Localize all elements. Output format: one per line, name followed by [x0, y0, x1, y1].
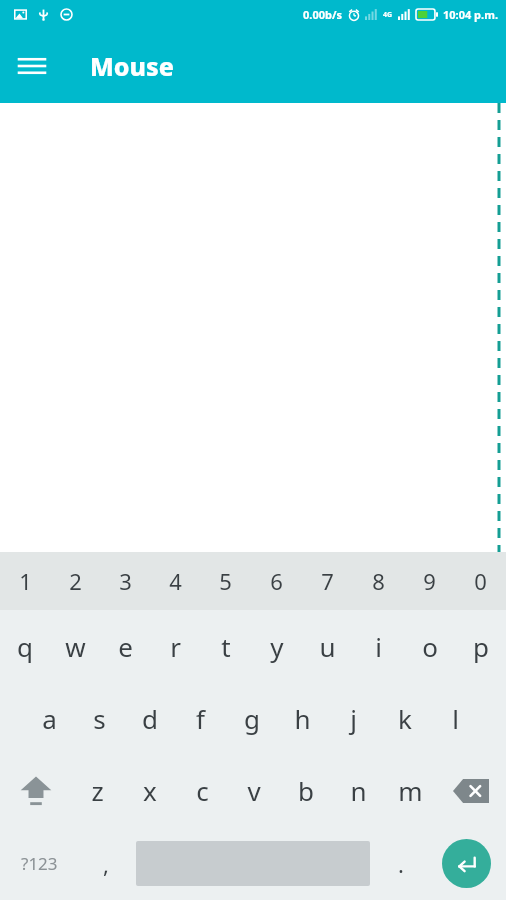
button[interactable]: a — [24, 682, 74, 754]
staticText: 3 — [119, 566, 132, 596]
staticText: m — [398, 773, 423, 808]
button[interactable]: e — [100, 610, 150, 682]
button[interactable]: 5 — [200, 552, 251, 610]
staticText: 0.00b/s — [303, 7, 343, 22]
button[interactable]: u — [302, 610, 353, 682]
button[interactable]: x — [124, 754, 176, 827]
button[interactable]: b — [280, 754, 332, 827]
button[interactable]: z — [71, 754, 124, 827]
staticText: j — [350, 701, 357, 736]
button[interactable]: t — [200, 610, 251, 682]
staticText: s — [93, 701, 106, 736]
staticText: 1 — [19, 566, 32, 596]
button[interactable]: s — [74, 682, 124, 754]
button[interactable]: Backspace — [436, 754, 506, 827]
staticText: x — [143, 773, 157, 808]
staticText: z — [91, 773, 104, 808]
button[interactable]: y — [251, 610, 302, 682]
staticText: a — [42, 701, 57, 736]
staticText: f — [196, 701, 205, 736]
staticText: e — [118, 629, 133, 664]
button[interactable]: Open navigation menu — [8, 42, 56, 90]
button[interactable]: 3 — [100, 552, 150, 610]
button[interactable]: 4 — [150, 552, 200, 610]
staticText: 6 — [270, 566, 283, 596]
button[interactable]: o — [404, 610, 455, 682]
staticText: p — [473, 629, 489, 664]
button[interactable]: . — [374, 827, 427, 900]
button[interactable]: k — [379, 682, 430, 754]
button[interactable]: 2 — [50, 552, 100, 610]
staticText: q — [17, 629, 33, 664]
button[interactable]: p — [455, 610, 506, 682]
staticText: o — [422, 629, 438, 664]
staticText: 4 — [169, 566, 182, 596]
staticText: y — [270, 629, 284, 664]
staticText: c — [196, 773, 209, 808]
staticText: 9 — [423, 566, 436, 596]
staticText: 10:04 p.m. — [443, 7, 498, 22]
staticText: t — [221, 629, 231, 664]
staticText: ?123 — [21, 852, 58, 875]
button[interactable]: 6 — [251, 552, 302, 610]
staticText: v — [247, 773, 261, 808]
staticText: k — [398, 701, 412, 736]
staticText: . — [398, 849, 404, 879]
staticText: u — [319, 629, 336, 664]
button[interactable]: v — [228, 754, 280, 827]
button[interactable]: 8 — [353, 552, 404, 610]
staticText: i — [375, 629, 382, 664]
button[interactable]: ?123 — [0, 827, 79, 900]
button[interactable]: Shift — [0, 754, 71, 827]
staticText: n — [350, 773, 367, 808]
button[interactable]: 7 — [302, 552, 353, 610]
button[interactable]: h — [277, 682, 328, 754]
staticText: Mouse — [90, 49, 174, 83]
staticText: r — [170, 629, 181, 664]
button[interactable]: j — [328, 682, 379, 754]
staticText: 8 — [372, 566, 385, 596]
button[interactable]: d — [124, 682, 175, 754]
staticText: d — [142, 701, 158, 736]
staticText: 2 — [69, 566, 82, 596]
button[interactable]: , — [79, 827, 132, 900]
button[interactable]: 1 — [0, 552, 50, 610]
button[interactable]: n — [332, 754, 384, 827]
staticText: w — [65, 629, 86, 664]
button[interactable]: 0 — [455, 552, 506, 610]
staticText: l — [452, 701, 459, 736]
button[interactable]: c — [176, 754, 228, 827]
staticText: 5 — [219, 566, 232, 596]
button[interactable]: l — [430, 682, 481, 754]
button[interactable]: g — [226, 682, 277, 754]
button[interactable]: m — [384, 754, 436, 827]
staticText: b — [298, 773, 314, 808]
button[interactable]: 9 — [404, 552, 455, 610]
button[interactable]: w — [50, 610, 100, 682]
staticText: h — [294, 701, 311, 736]
button[interactable]: r — [150, 610, 200, 682]
staticText: 4G — [383, 10, 393, 20]
staticText: g — [244, 701, 260, 736]
staticText: 0 — [474, 566, 487, 596]
staticText: , — [103, 849, 109, 879]
staticText: 7 — [321, 566, 334, 596]
button[interactable]: i — [353, 610, 404, 682]
button[interactable]: f — [175, 682, 226, 754]
button[interactable]: Enter — [427, 827, 506, 900]
button[interactable]: q — [0, 610, 50, 682]
